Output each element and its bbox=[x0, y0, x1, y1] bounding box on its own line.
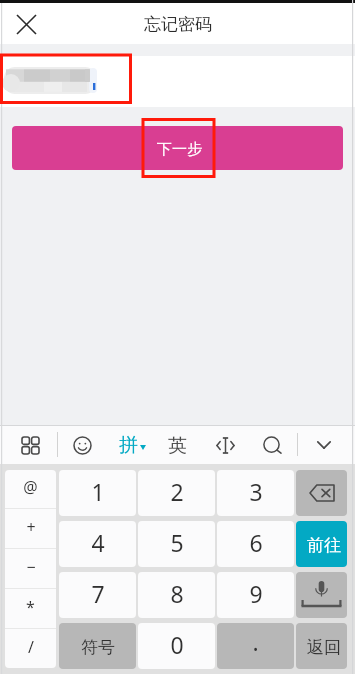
button[interactable]: 9 bbox=[217, 572, 294, 618]
staticText: 1 bbox=[91, 476, 105, 507]
staticText: / bbox=[28, 636, 34, 658]
button[interactable]: * bbox=[5, 589, 56, 628]
button[interactable]: . bbox=[217, 623, 294, 669]
staticText: 9 bbox=[249, 578, 263, 609]
staticText: 忘记密码 bbox=[144, 14, 212, 35]
button[interactable]: Move cursor bbox=[209, 429, 241, 461]
staticText: 3 bbox=[249, 476, 263, 507]
button[interactable]: 0 bbox=[138, 623, 215, 669]
staticText: 符号 bbox=[81, 637, 115, 658]
button[interactable]: @ bbox=[5, 470, 56, 508]
button[interactable]: 4 bbox=[59, 521, 136, 567]
staticText: 4 bbox=[91, 527, 105, 558]
staticText: 0 bbox=[170, 629, 184, 660]
button[interactable]: Voice input bbox=[296, 572, 347, 618]
button[interactable]: 6 bbox=[217, 521, 294, 567]
button[interactable]: 1 bbox=[59, 470, 136, 516]
button[interactable]: 5 bbox=[138, 521, 215, 567]
button[interactable]: Search bbox=[256, 429, 288, 461]
button[interactable]: 下一步 bbox=[12, 126, 343, 170]
staticText: @ bbox=[23, 476, 38, 498]
button[interactable]: Backspace bbox=[296, 470, 347, 516]
button[interactable]: 英 bbox=[168, 435, 187, 459]
staticText: + bbox=[26, 516, 36, 538]
button[interactable]: Close bbox=[10, 8, 42, 40]
staticText: 2 bbox=[170, 476, 184, 507]
staticText: 英 bbox=[168, 434, 187, 458]
button[interactable]: 2 bbox=[138, 470, 215, 516]
button[interactable]: 前往 bbox=[296, 521, 347, 567]
staticText: 返回 bbox=[307, 637, 341, 658]
staticText: 前往 bbox=[307, 535, 341, 556]
staticText: . bbox=[252, 626, 259, 657]
staticText: 7 bbox=[91, 578, 105, 609]
staticText: 5 bbox=[170, 527, 184, 558]
other: Backspace bbox=[296, 470, 347, 516]
staticText: 6 bbox=[249, 527, 263, 558]
staticText: 下一步 bbox=[157, 140, 202, 159]
button[interactable]: 7 bbox=[59, 572, 136, 618]
button[interactable]: 符号 bbox=[59, 623, 136, 669]
button[interactable]: − bbox=[5, 549, 56, 588]
button[interactable]: 3 bbox=[217, 470, 294, 516]
button[interactable]: 返回 bbox=[296, 623, 347, 669]
staticText: − bbox=[26, 556, 36, 578]
staticText: 8 bbox=[170, 578, 184, 609]
staticText: * bbox=[26, 596, 35, 618]
other: Voice input bbox=[296, 572, 347, 618]
button[interactable]: Emoji bbox=[66, 429, 98, 461]
button[interactable]: / bbox=[5, 629, 56, 668]
button[interactable]: 8 bbox=[138, 572, 215, 618]
button[interactable]: Keyboard layouts bbox=[14, 429, 46, 461]
staticText: 拼 bbox=[119, 433, 138, 457]
button[interactable]: + bbox=[5, 509, 56, 548]
button[interactable]: Hide keyboard bbox=[308, 429, 340, 461]
button[interactable]: 拼 bbox=[119, 434, 146, 458]
